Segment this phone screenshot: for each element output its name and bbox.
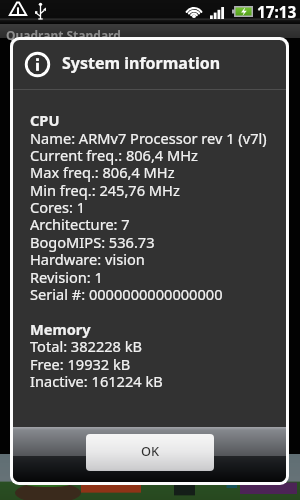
staticText: System information bbox=[62, 52, 221, 74]
staticText: OK bbox=[141, 442, 160, 459]
staticText: Revision: 1 bbox=[30, 267, 103, 287]
other: Information bbox=[24, 51, 51, 78]
staticText: CPU bbox=[30, 110, 60, 130]
staticText: Architecture: 7 bbox=[30, 214, 130, 234]
staticText: Max freq.: 806,4 MHz bbox=[30, 162, 175, 182]
staticText: Min freq.: 245,76 MHz bbox=[30, 180, 180, 200]
staticText: Free: 19932 kB bbox=[30, 354, 131, 374]
staticText: Hardware: vision bbox=[30, 249, 145, 269]
staticText: Inactive: 161224 kB bbox=[30, 371, 163, 391]
staticText: Memory bbox=[30, 319, 91, 339]
staticText: BogoMIPS: 536.73 bbox=[30, 232, 155, 252]
staticText: Cores: 1 bbox=[30, 197, 86, 217]
staticText: Current freq.: 806,4 MHz bbox=[30, 145, 198, 165]
staticText: Quadrant Standard bbox=[6, 27, 121, 43]
staticText: 17:13 bbox=[257, 2, 297, 23]
staticText: Serial #: 0000000000000000 bbox=[30, 284, 223, 304]
staticText: Name: ARMv7 Processor rev 1 (v7l) bbox=[30, 128, 267, 148]
button[interactable]: OK bbox=[86, 434, 214, 471]
staticText: Total: 382228 kB bbox=[30, 336, 143, 356]
